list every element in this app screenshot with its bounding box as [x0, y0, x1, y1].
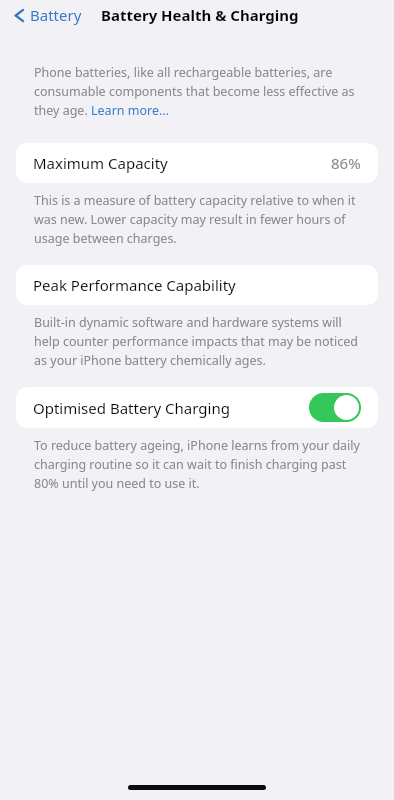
button[interactable]: Peak Performance Capability [16, 265, 378, 305]
staticText: Phone batteries, like all rechargeable b… [34, 64, 360, 119]
staticText: Maximum Capacity [33, 153, 168, 173]
staticText: 86% [331, 153, 361, 173]
button[interactable]: Maximum Capacity [16, 143, 378, 183]
staticText: To reduce battery ageing, iPhone learns … [34, 437, 360, 492]
button[interactable]: Optimised Battery Charging [16, 387, 378, 428]
button[interactable]: Battery [0, 2, 88, 28]
staticText: Battery Health & Charging [101, 5, 299, 25]
staticText: This is a measure of battery capacity re… [34, 192, 360, 247]
staticText: Optimised Battery Charging [33, 398, 230, 418]
staticText: Battery [30, 5, 82, 25]
staticText: Peak Performance Capability [33, 275, 236, 295]
button[interactable]: Optimised Battery Charging toggle [309, 393, 361, 422]
staticText: Built-in dynamic software and hardware s… [34, 314, 360, 369]
